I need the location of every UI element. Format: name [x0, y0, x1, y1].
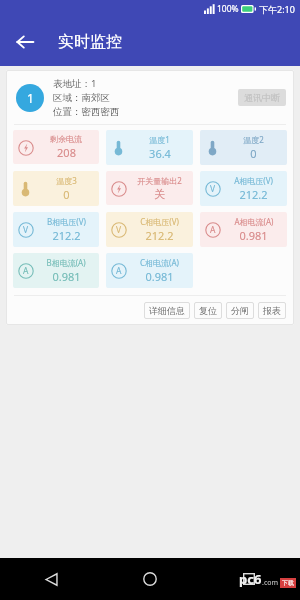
- staticText: 1: [27, 90, 34, 106]
- staticText: V: [23, 224, 29, 236]
- button[interactable]: 报表: [263, 305, 281, 316]
- staticText: 区域：南郊区: [53, 92, 110, 104]
- staticText: .com: [262, 578, 279, 588]
- staticText: 开关量输出2: [137, 175, 182, 186]
- staticText: A: [116, 265, 122, 277]
- staticText: A相电流(A): [234, 216, 274, 227]
- staticText: 100%: [217, 3, 239, 15]
- staticText: V: [210, 183, 216, 195]
- staticText: B相电压(V): [47, 216, 86, 227]
- button[interactable]: 温度2: [204, 134, 284, 161]
- staticText: 下午2:10: [259, 3, 295, 15]
- staticText: 0.981: [239, 228, 268, 243]
- button[interactable]: 开关量输出2: [110, 175, 190, 201]
- button[interactable]: V: [110, 216, 190, 243]
- button[interactable]: 温度1: [110, 134, 190, 161]
- staticText: 212.2: [239, 187, 268, 202]
- staticText: 212.2: [52, 228, 81, 243]
- staticText: 通讯中断: [244, 92, 280, 103]
- staticText: C相电压(V): [140, 216, 179, 227]
- staticText: 0.981: [52, 269, 81, 284]
- staticText: A: [23, 265, 29, 277]
- staticText: 实时监控: [58, 32, 122, 52]
- staticText: 温度3: [56, 175, 77, 186]
- button[interactable]: Back: [8, 25, 42, 59]
- staticText: A: [210, 224, 216, 236]
- staticText: C相电流(A): [140, 257, 179, 268]
- button[interactable]: 复位: [199, 305, 217, 316]
- button[interactable]: 详细信息: [149, 305, 185, 316]
- staticText: 0: [250, 146, 257, 161]
- button[interactable]: 1: [6, 70, 294, 325]
- staticText: 下载: [282, 579, 294, 587]
- staticText: 位置：密西密西: [53, 106, 120, 118]
- button[interactable]: A: [17, 257, 96, 284]
- button[interactable]: 通讯中断: [244, 92, 280, 103]
- staticText: 分闸: [231, 305, 249, 316]
- button[interactable]: Recents: [232, 562, 266, 596]
- staticText: pc6: [239, 570, 262, 588]
- staticText: 剩余电流: [50, 134, 82, 144]
- staticText: 表地址：1: [53, 77, 97, 90]
- staticText: 0: [63, 187, 70, 202]
- staticText: 208: [57, 145, 76, 160]
- button[interactable]: A: [110, 257, 190, 284]
- button[interactable]: V: [17, 216, 96, 243]
- staticText: 关: [154, 187, 165, 201]
- staticText: 36.4: [149, 146, 171, 161]
- staticText: 温度1: [149, 134, 170, 145]
- staticText: 报表: [263, 305, 281, 316]
- staticText: V: [116, 224, 122, 236]
- staticText: B相电流(A): [46, 257, 86, 268]
- button[interactable]: 分闸: [231, 305, 249, 316]
- staticText: 详细信息: [149, 305, 185, 316]
- staticText: 0.981: [145, 269, 174, 284]
- staticText: 温度2: [243, 134, 264, 145]
- button[interactable]: Home: [133, 562, 167, 596]
- button[interactable]: 剩余电流: [17, 134, 96, 160]
- button[interactable]: V: [204, 175, 284, 202]
- button[interactable]: Back: [34, 562, 68, 596]
- button[interactable]: 温度3: [17, 175, 96, 202]
- staticText: 复位: [199, 305, 217, 316]
- staticText: 212.2: [145, 228, 174, 243]
- staticText: A相电压(V): [234, 175, 273, 186]
- button[interactable]: A: [204, 216, 284, 243]
